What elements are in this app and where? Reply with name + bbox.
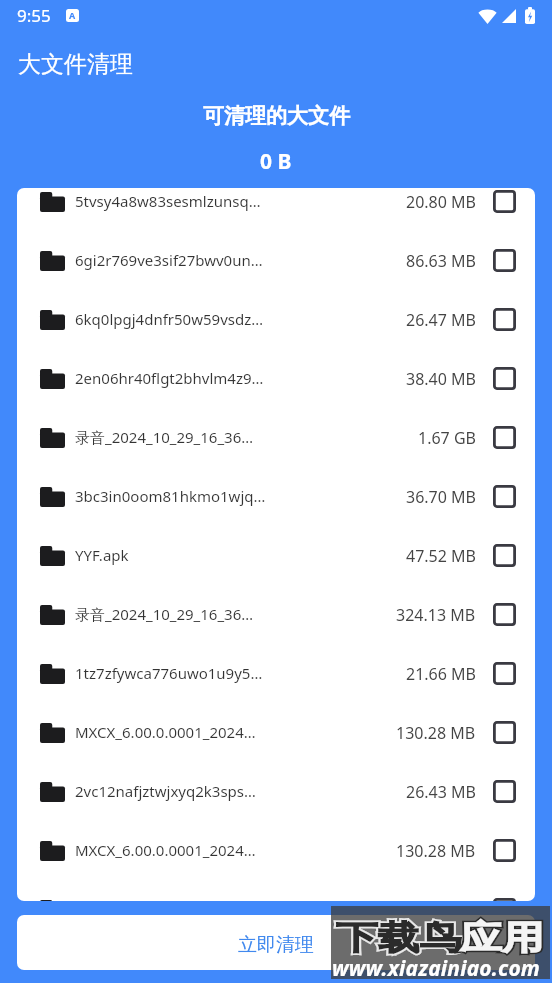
staticText: www.xiazainiao.com bbox=[332, 954, 541, 983]
button[interactable]: Select 5tvsy4a8w83sesmlzunsq… bbox=[493, 190, 516, 213]
button[interactable]: Folder bbox=[17, 821, 535, 880]
button[interactable]: Select 1tz7zfywca776uwo1u9y5… bbox=[493, 662, 516, 685]
other: Battery charging bbox=[525, 7, 535, 24]
other: Folder bbox=[40, 251, 65, 271]
button[interactable]: Folder bbox=[17, 526, 535, 585]
staticText: MXCX_6.00.0.0001_2024… bbox=[75, 840, 256, 860]
button[interactable]: Folder bbox=[17, 188, 535, 231]
button[interactable]: Select 6gi2r769ve3sif27bwv0un… bbox=[493, 249, 516, 272]
staticText: 86.63 MB bbox=[406, 250, 476, 272]
button[interactable]: Select 7gh3knoom81hkmo1wjq… bbox=[493, 898, 516, 901]
staticText: 38.40 MB bbox=[406, 368, 476, 390]
staticText: 36.70 MB bbox=[406, 486, 476, 508]
staticText: 6gi2r769ve3sif27bwv0un… bbox=[75, 250, 263, 270]
other: Folder bbox=[40, 487, 65, 507]
staticText: 21.66 MB bbox=[406, 663, 476, 685]
staticText: 录音_2024_10_29_16_36… bbox=[75, 604, 254, 624]
other: Folder bbox=[40, 782, 65, 802]
button[interactable]: Folder bbox=[17, 408, 535, 467]
other: Folder bbox=[40, 841, 65, 861]
staticText: 130.28 MB bbox=[396, 840, 476, 862]
button[interactable]: Folder bbox=[17, 644, 535, 703]
staticText: YYF.apk bbox=[75, 545, 129, 565]
other: Folder bbox=[40, 310, 65, 330]
other: Folder bbox=[40, 192, 65, 212]
button[interactable]: Select 录音_2024_10_29_16_36… bbox=[493, 603, 516, 626]
staticText: 6kq0lpgj4dnfr50w59vsdz… bbox=[75, 309, 264, 329]
other: Mobile signal bbox=[502, 9, 516, 23]
staticText: 5tvsy4a8w83sesmlzunsq… bbox=[75, 191, 261, 211]
staticText: 下载鸟 bbox=[336, 917, 462, 959]
button[interactable]: Select 录音_2024_10_29_16_36… bbox=[493, 426, 516, 449]
other: Folder bbox=[40, 546, 65, 566]
other: Folder bbox=[40, 428, 65, 448]
button[interactable]: Folder bbox=[17, 585, 535, 644]
other: Folder bbox=[40, 664, 65, 684]
staticText: 2en06hr40flgt2bhvlm4z9… bbox=[75, 368, 264, 388]
button[interactable]: Folder bbox=[17, 762, 535, 821]
staticText: 1tz7zfywca776uwo1u9y5… bbox=[75, 663, 263, 683]
button[interactable]: Select 3bc3in0oom81hkmo1wjq… bbox=[493, 485, 516, 508]
button[interactable]: 立即清理 bbox=[17, 915, 535, 970]
staticText: 0 B bbox=[260, 147, 292, 176]
staticText: 大文件清理 bbox=[18, 50, 133, 79]
other: Folder bbox=[40, 900, 65, 901]
other: Wi-Fi bbox=[478, 8, 497, 24]
button[interactable]: Folder bbox=[17, 703, 535, 762]
button[interactable]: Folder bbox=[17, 880, 535, 901]
staticText: 立即清理 bbox=[238, 933, 314, 957]
staticText: 20.80 MB bbox=[406, 191, 476, 213]
button[interactable]: Select 6kq0lpgj4dnfr50w59vsdz… bbox=[493, 308, 516, 331]
staticText: 26.43 MB bbox=[406, 781, 476, 803]
other: Folder bbox=[40, 605, 65, 625]
button[interactable]: Folder bbox=[17, 467, 535, 526]
button[interactable]: Select MXCX_6.00.0.0001_2024… bbox=[493, 721, 516, 744]
staticText: 可清理的大文件 bbox=[203, 103, 350, 129]
button[interactable]: Folder bbox=[17, 349, 535, 408]
button[interactable]: Select YYF.apk bbox=[493, 544, 516, 567]
staticText: 下载鸟 bbox=[336, 917, 462, 959]
staticText: A bbox=[69, 9, 76, 21]
other: Folder bbox=[40, 369, 65, 389]
staticText: 录音_2024_10_29_16_36… bbox=[75, 427, 254, 447]
button[interactable]: Select MXCX_6.00.0.0001_2024… bbox=[493, 839, 516, 862]
staticText: 3bc3in0oom81hkmo1wjq… bbox=[75, 486, 266, 506]
button[interactable]: Select 2en06hr40flgt2bhvlm4z9… bbox=[493, 367, 516, 390]
staticText: 47.52 MB bbox=[406, 545, 476, 567]
staticText: 应用 bbox=[460, 917, 544, 959]
staticText: 2vc12nafjztwjxyq2k3sps… bbox=[75, 781, 256, 801]
staticText: 26.47 MB bbox=[406, 309, 476, 331]
button[interactable]: Folder bbox=[17, 231, 535, 290]
staticText: MXCX_6.00.0.0001_2024… bbox=[75, 722, 256, 742]
staticText: 9:55 bbox=[17, 4, 51, 27]
staticText: 324.13 MB bbox=[396, 604, 476, 626]
other: Folder bbox=[40, 723, 65, 743]
staticText: 130.28 MB bbox=[396, 722, 476, 744]
button[interactable]: Folder bbox=[17, 290, 535, 349]
staticText: 1.67 GB bbox=[418, 427, 476, 449]
staticText: 应用 bbox=[460, 917, 544, 959]
button[interactable]: Select 2vc12nafjztwjxyq2k3sps… bbox=[493, 780, 516, 803]
